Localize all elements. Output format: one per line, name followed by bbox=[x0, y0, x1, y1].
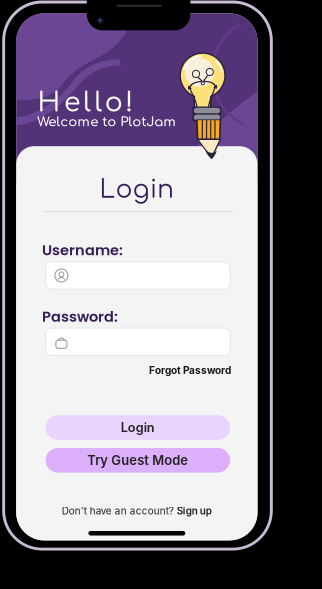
staticText: Login bbox=[99, 176, 174, 203]
staticText: Forgot Password bbox=[149, 364, 231, 376]
staticText: Welcome to PlotJam bbox=[37, 115, 176, 129]
staticText: Login bbox=[121, 420, 155, 435]
button[interactable]: Forgot Password bbox=[47, 365, 231, 376]
staticText: Sign up bbox=[177, 505, 212, 517]
button[interactable]: Login bbox=[46, 415, 230, 440]
button[interactable]: Try Guest Mode bbox=[46, 448, 230, 473]
button[interactable]: Don't have an account? bbox=[16, 504, 257, 518]
staticText: Try Guest Mode bbox=[87, 452, 188, 468]
staticText: Hello! bbox=[38, 88, 133, 118]
staticText: Username: bbox=[42, 240, 123, 260]
staticText: Don't have an account? bbox=[62, 505, 174, 517]
staticText: Password: bbox=[42, 306, 118, 327]
